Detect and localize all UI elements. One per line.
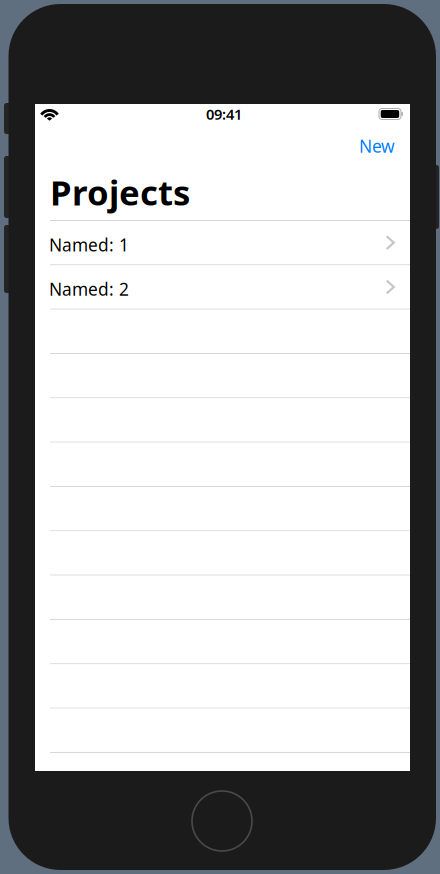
staticText: Projects xyxy=(50,169,190,215)
button[interactable]: New xyxy=(351,126,403,165)
button[interactable]: Named: 2 xyxy=(35,265,410,310)
staticText: Named: 2 xyxy=(49,277,129,300)
button[interactable]: Named: 1 xyxy=(35,221,410,265)
staticText: Named: 1 xyxy=(49,233,129,256)
staticText: New xyxy=(359,134,395,157)
staticText: 09:41 xyxy=(206,104,242,124)
